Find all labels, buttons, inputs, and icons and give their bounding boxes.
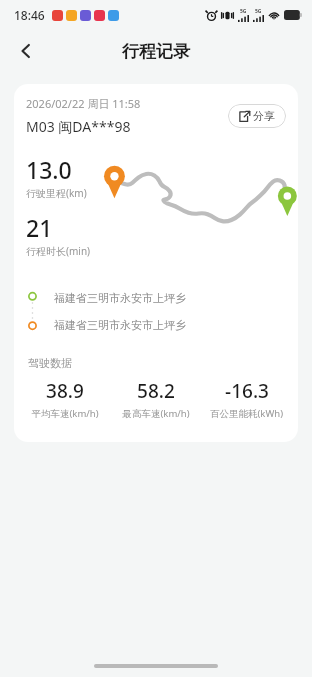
button[interactable]: 分享 bbox=[228, 104, 286, 128]
staticText: 行程时长(min) bbox=[26, 244, 91, 258]
staticText: 行程记录 bbox=[122, 41, 190, 62]
staticText: 58.2 bbox=[137, 378, 175, 404]
staticText: 2026/02/22 周日 11:58 bbox=[26, 96, 141, 111]
staticText: -16.3 bbox=[225, 378, 269, 404]
staticText: 平均车速(km/h) bbox=[31, 407, 99, 420]
staticText: 21 bbox=[26, 212, 53, 243]
staticText: 福建省三明市永安市上坪乡 bbox=[54, 318, 186, 332]
staticText: 13.0 bbox=[26, 154, 72, 185]
staticText: 5G bbox=[240, 8, 247, 15]
staticText: 百公里能耗(kWh) bbox=[210, 407, 283, 420]
staticText: 驾驶数据 bbox=[28, 356, 72, 370]
staticText: M03 闽DA***98 bbox=[26, 117, 131, 136]
staticText: 行驶里程(km) bbox=[26, 186, 87, 200]
staticText: 18:46 bbox=[14, 7, 45, 23]
staticText: 最高车速(km/h) bbox=[122, 407, 190, 420]
button[interactable]: Back bbox=[6, 31, 46, 71]
staticText: 38.9 bbox=[46, 378, 84, 404]
staticText: 5G bbox=[255, 8, 262, 15]
staticText: 福建省三明市永安市上坪乡 bbox=[54, 291, 186, 305]
staticText: 分享 bbox=[253, 109, 275, 123]
